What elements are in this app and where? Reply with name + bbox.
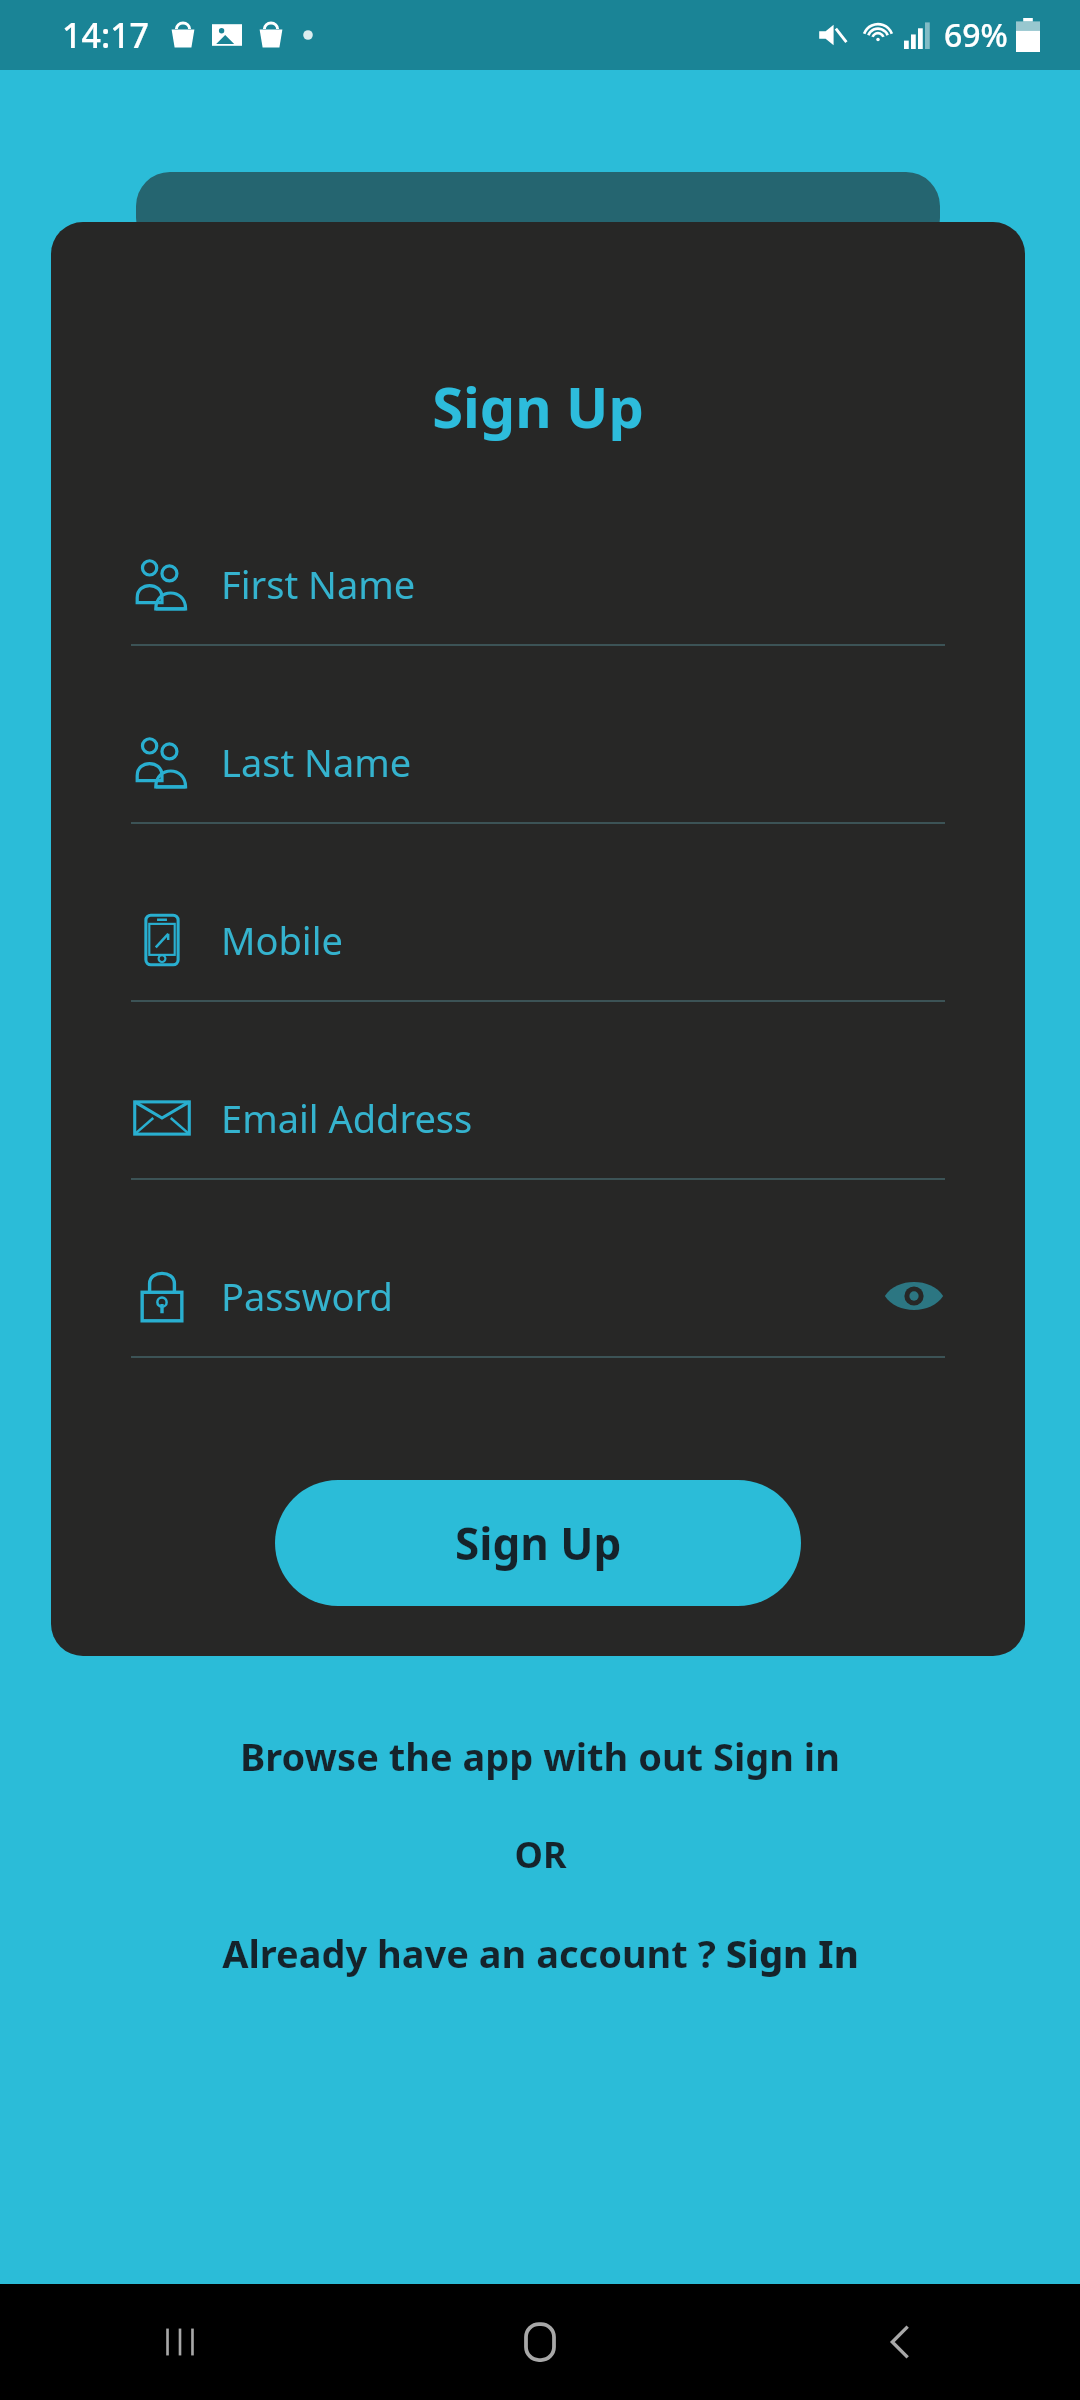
staticText: 14:17 (62, 12, 150, 58)
staticText: Sign Up (51, 368, 1025, 444)
button[interactable]: Sign Up (275, 1480, 801, 1606)
staticText: Sign Up (455, 1513, 622, 1573)
button[interactable]: Last Name (51, 702, 1025, 880)
button[interactable]: Show password (883, 1265, 945, 1327)
button[interactable]: Recent apps (125, 2287, 235, 2397)
button[interactable]: First Name (51, 524, 1025, 702)
staticText: Password (221, 1270, 393, 1322)
staticText: First Name (221, 558, 416, 610)
staticText: Browse the app with out Sign in (240, 1730, 840, 1782)
button[interactable]: Browse the app with out Sign in (0, 1730, 1080, 1782)
staticText: Mobile (221, 914, 343, 966)
button[interactable]: Back (845, 2287, 955, 2397)
button[interactable]: Mobile (51, 880, 1025, 1058)
staticText: Already have an account ? Sign In (222, 1927, 859, 1979)
button[interactable]: Email Address (51, 1058, 1025, 1236)
staticText: 69% (944, 13, 1008, 57)
staticText: Last Name (221, 736, 412, 788)
button[interactable]: Password (51, 1236, 1025, 1414)
button[interactable]: Home (485, 2287, 595, 2397)
staticText: Email Address (221, 1092, 473, 1144)
staticText: OR (514, 1830, 567, 1879)
button[interactable]: Already have an account ? Sign In (0, 1927, 1080, 1979)
